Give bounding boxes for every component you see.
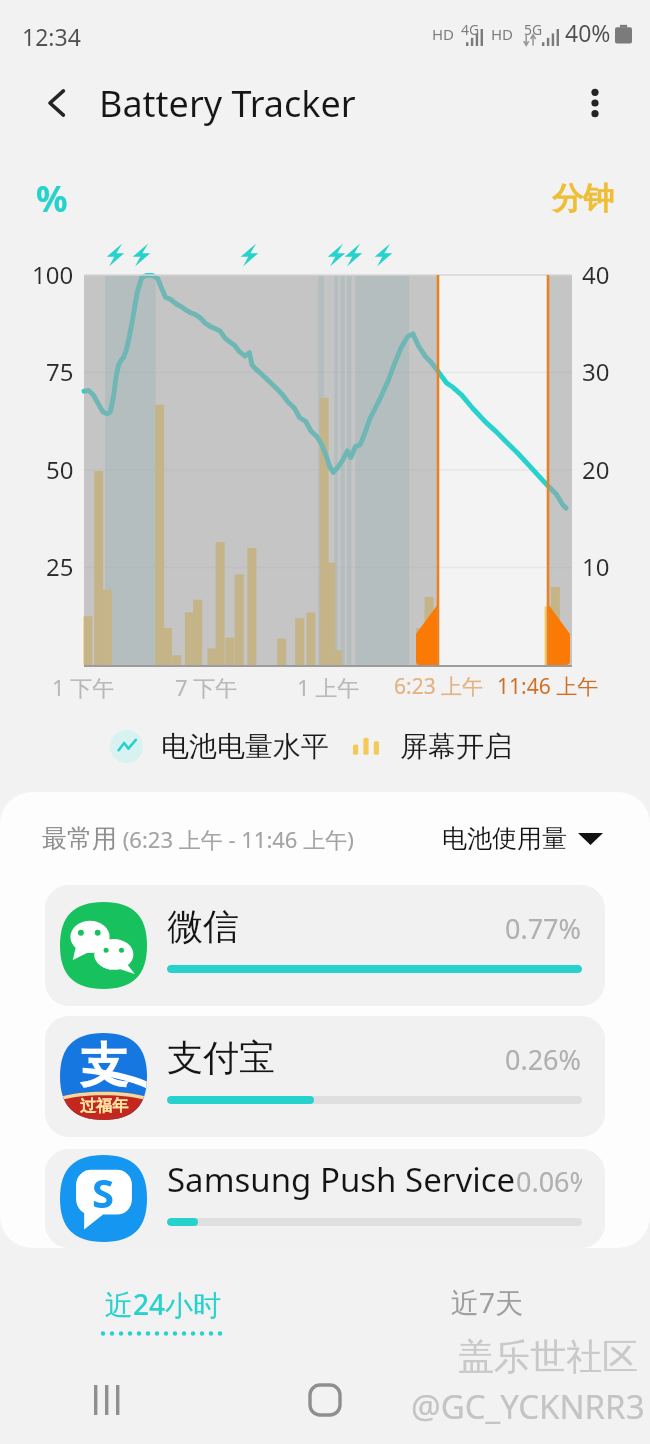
staticText: 盖乐世社区 <box>458 1334 638 1379</box>
button[interactable]: 近24小时 <box>0 1264 325 1356</box>
staticText: @GC_YCKNRR3 <box>411 1384 645 1429</box>
staticText: 7 下午 <box>175 672 238 702</box>
staticText: 近7天 <box>451 1283 524 1321</box>
staticText: 75 <box>46 355 74 388</box>
staticText: 50 <box>46 453 74 486</box>
staticText: 屏幕开启 <box>400 729 512 764</box>
staticText: 25 <box>46 550 74 583</box>
staticText: 分钟 <box>552 179 614 218</box>
staticText: Samsung Push Service <box>167 1157 516 1202</box>
staticText: 0.06% <box>516 1163 582 1200</box>
staticText: 5G <box>524 20 543 39</box>
staticText: 过福年 <box>80 1096 128 1116</box>
button[interactable]: Back <box>433 1356 650 1444</box>
button[interactable]: Home <box>216 1356 433 1444</box>
staticText: 0.26% <box>505 1041 582 1078</box>
staticText: (6:23 上午 - 11:46 上午) <box>117 824 354 854</box>
staticText: 6:23 上午 <box>394 672 484 701</box>
button[interactable]: Recents <box>0 1356 216 1444</box>
staticText: 电池电量水平 <box>161 729 329 764</box>
staticText: S <box>92 1165 115 1219</box>
staticText: 40% <box>565 17 611 48</box>
staticText: 40 <box>582 258 610 291</box>
staticText: 20 <box>582 453 610 486</box>
staticText: 4G <box>461 20 480 39</box>
staticText: 支付宝 <box>167 1035 275 1080</box>
staticText: 30 <box>582 355 610 388</box>
staticText: 微信 <box>167 904 239 949</box>
staticText: 0.77% <box>505 910 582 947</box>
staticText: Battery Tracker <box>99 79 356 128</box>
staticText: 近24小时 <box>105 1285 222 1323</box>
button[interactable]: S <box>45 1149 605 1248</box>
staticText: HD <box>432 24 455 44</box>
staticText: 12:34 <box>22 21 81 52</box>
staticText: 最常用 <box>42 823 117 854</box>
staticText: HD <box>491 24 514 44</box>
staticText: 1 上午 <box>297 672 360 702</box>
button[interactable]: Back <box>28 74 86 132</box>
button[interactable]: 支 <box>45 1016 605 1137</box>
staticText: 电池使用量 <box>442 823 567 854</box>
staticText: % <box>36 175 68 223</box>
button[interactable]: 近7天 <box>325 1264 650 1356</box>
staticText: 支 <box>80 1036 128 1096</box>
staticText: 11:46 上午 <box>497 672 599 701</box>
button[interactable]: 电池使用量 <box>442 823 603 854</box>
staticText: 100 <box>32 258 74 291</box>
staticText: 10 <box>582 550 610 583</box>
staticText: 1 下午 <box>52 672 115 702</box>
button[interactable]: 微信 <box>45 885 605 1006</box>
button[interactable]: More options <box>566 74 624 132</box>
